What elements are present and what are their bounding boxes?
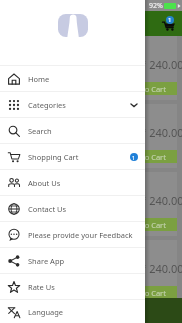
button[interactable]: Add to Cart [115,218,177,231]
staticText: Rate Us [28,282,55,292]
button[interactable]: Language [0,300,145,323]
staticText: Contact Us [28,204,67,214]
staticText: Add to Cart [126,152,166,162]
button[interactable]: Shopping cart [161,15,178,32]
staticText: Language [28,307,64,317]
staticText: Home [28,74,50,84]
staticText: Share App [28,256,65,266]
button[interactable]: Rate Us [0,274,145,299]
staticText: 1 [168,16,172,24]
staticText: ₹ 240.00 [140,125,182,140]
staticText: Search [28,126,52,136]
staticText: Add to Cart [126,220,166,230]
button[interactable]: Home [0,66,145,91]
button[interactable]: Add to Cart [115,82,177,95]
staticText: ₹ 240.00 [140,193,182,208]
button[interactable]: Contact Us [0,196,145,221]
button[interactable]: Add to Cart [115,286,177,299]
staticText: Shopping Cart [28,152,79,162]
staticText: Please provide your Feedback [28,230,133,240]
staticText: Add to Cart [126,288,166,298]
staticText: 92% [149,1,163,11]
button[interactable]: Search [0,118,145,143]
button[interactable]: Please provide your Feedback [0,222,145,247]
button[interactable]: Shopping Cart [0,144,145,169]
staticText: ₹ 240.00 [140,261,182,276]
staticText: Add to Cart [126,84,166,94]
staticText: About Us [28,178,61,188]
button[interactable]: Add to Cart [115,150,177,163]
staticText: Categories [28,100,66,110]
staticText: ₹ 240.00 [140,57,182,72]
button[interactable]: Share App [0,248,145,273]
button[interactable]: About Us [0,170,145,195]
staticText: 1 [132,154,136,161]
button[interactable]: Categories [0,92,145,117]
